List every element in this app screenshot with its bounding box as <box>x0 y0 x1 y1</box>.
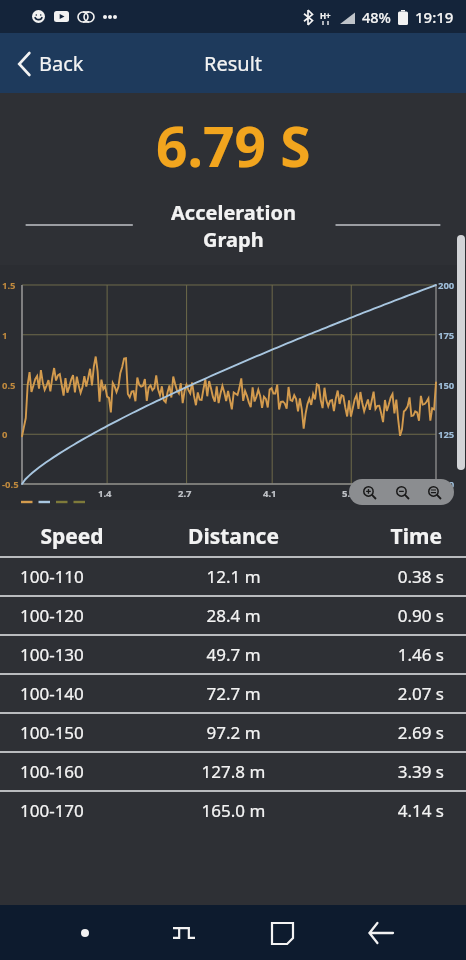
staticText: 5.4 <box>342 487 356 500</box>
staticText: 0 <box>2 428 8 441</box>
button[interactable]: 100-150 <box>0 714 466 751</box>
button[interactable]: 100-120 <box>0 597 466 634</box>
staticText: 48% <box>362 7 391 27</box>
staticText: 12.1 m <box>144 565 323 588</box>
staticText: 1.4 <box>98 487 112 500</box>
staticText: 0.5 <box>2 379 16 392</box>
staticText: 4.1 <box>263 487 277 500</box>
staticText: Graph <box>203 226 264 253</box>
staticText: 0.90 s <box>323 604 444 627</box>
staticText: 6.79 S <box>156 108 311 183</box>
staticText: 49.7 m <box>144 643 323 666</box>
staticText: 19:19 <box>415 7 454 27</box>
staticText: 2.7 <box>178 487 192 500</box>
staticText: Result <box>204 50 263 77</box>
staticText: 165.0 m <box>144 799 323 822</box>
staticText: 0.38 s <box>323 565 444 588</box>
staticText: 72.7 m <box>144 682 323 705</box>
staticText: 1.46 s <box>323 643 444 666</box>
staticText: 100-150 <box>20 721 144 744</box>
staticText: Back <box>39 50 84 77</box>
staticText: 100-160 <box>20 760 144 783</box>
button[interactable]: Back <box>357 909 405 957</box>
staticText: 6.79 <box>427 487 446 500</box>
staticText: 100-120 <box>20 604 144 627</box>
button[interactable]: 100-140 <box>0 675 466 712</box>
button[interactable]: 100-130 <box>0 636 466 673</box>
staticText: -0.5 <box>2 478 19 491</box>
staticText: 125 <box>438 428 455 441</box>
button[interactable]: Zoom out <box>389 479 415 505</box>
button[interactable]: Zoom in <box>356 479 382 505</box>
staticText: 3.39 s <box>323 760 444 783</box>
staticText: 1.5 <box>2 279 16 292</box>
staticText: 100-140 <box>20 682 144 705</box>
staticText: Distance <box>144 522 323 551</box>
button[interactable]: Reset zoom <box>421 479 447 505</box>
button[interactable]: 100-170 <box>0 792 466 829</box>
staticText: 150 <box>438 379 455 392</box>
staticText: H+ <box>320 10 331 21</box>
staticText: 175 <box>438 329 455 342</box>
staticText: 100-170 <box>20 799 144 822</box>
button[interactable]: 100-110 <box>0 558 466 595</box>
button[interactable]: Home <box>258 909 306 957</box>
staticText: 97.2 m <box>144 721 323 744</box>
button[interactable]: Back <box>0 42 98 85</box>
button[interactable]: Recents <box>160 909 208 957</box>
staticText: 2.07 s <box>323 682 444 705</box>
staticText: 1 <box>2 329 8 342</box>
staticText: 100 <box>438 478 455 491</box>
staticText: 28.4 m <box>144 604 323 627</box>
staticText: Time <box>323 522 442 551</box>
staticText: 2.69 s <box>323 721 444 744</box>
staticText: 100-130 <box>20 643 144 666</box>
staticText: Speed <box>0 522 144 551</box>
button[interactable]: Assistant <box>61 909 109 957</box>
staticText: 200 <box>438 279 455 292</box>
button[interactable]: 100-160 <box>0 753 466 790</box>
staticText: 4.14 s <box>323 799 444 822</box>
staticText: 100-110 <box>20 565 144 588</box>
staticText: 127.8 m <box>144 760 323 783</box>
staticText: Acceleration <box>171 199 296 226</box>
